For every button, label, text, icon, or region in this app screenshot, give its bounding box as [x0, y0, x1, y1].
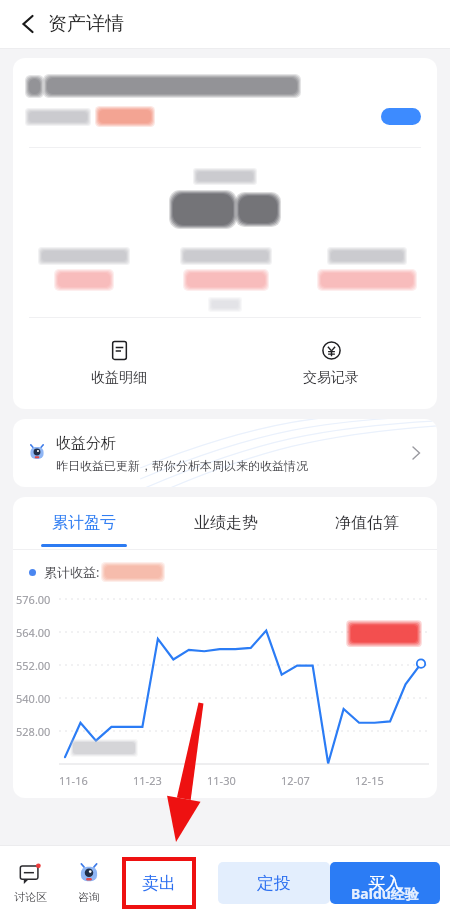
staticText: 资产详情	[48, 12, 124, 36]
staticText: 12-07	[281, 773, 310, 788]
button[interactable]: 收益明细	[13, 318, 225, 409]
staticText: 528.00	[16, 724, 51, 739]
staticText: 收益分析	[56, 434, 116, 453]
staticText: 定投	[257, 873, 291, 894]
staticText: 交易记录	[303, 369, 359, 387]
button[interactable]: 卖出	[124, 859, 194, 907]
staticText: 552.00	[16, 658, 51, 673]
button[interactable]: 交易记录	[225, 318, 437, 409]
staticText: 540.00	[16, 691, 51, 706]
button[interactable]: 买入	[330, 862, 440, 904]
staticText: 564.00	[16, 625, 51, 640]
button[interactable]: 咨询	[60, 846, 118, 920]
staticText: 576.00	[16, 592, 51, 607]
staticText: 11-30	[207, 773, 236, 788]
staticText: 11-23	[133, 773, 162, 788]
button[interactable]: 标签	[381, 108, 421, 125]
staticText: 讨论区	[14, 890, 47, 904]
staticText: Baidu经验	[351, 884, 419, 903]
staticText: 收益明细	[91, 369, 147, 387]
staticText: 累计盈亏	[52, 513, 116, 533]
staticText: 11-16	[59, 773, 88, 788]
staticText: 卖出	[142, 873, 176, 894]
staticText: 买入	[368, 873, 402, 894]
staticText: 12-15	[355, 773, 384, 788]
staticText: 业绩走势	[194, 513, 258, 533]
button[interactable]: 净值估算	[296, 497, 437, 549]
staticText: 净值估算	[335, 513, 399, 533]
button[interactable]: 业绩走势	[155, 497, 296, 549]
staticText: 累计收益:	[44, 563, 100, 581]
staticText: 咨询	[78, 890, 100, 904]
button[interactable]: 定投	[218, 862, 330, 904]
staticText: 昨日收益已更新，帮你分析本周以来的收益情况	[56, 458, 308, 473]
button[interactable]: 收益分析	[13, 419, 437, 487]
button[interactable]: 累计盈亏	[13, 497, 155, 549]
button[interactable]: Back	[8, 4, 48, 44]
button[interactable]: 讨论区	[0, 846, 60, 920]
